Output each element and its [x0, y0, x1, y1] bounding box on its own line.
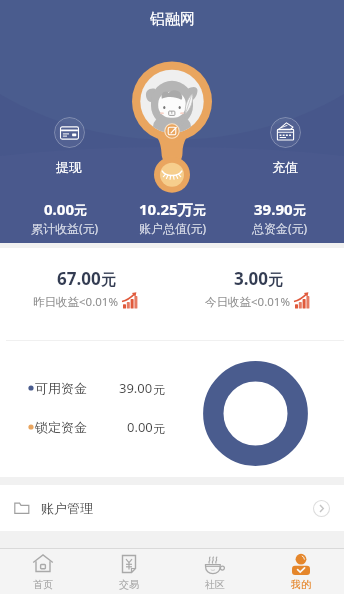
staticText: 我的: [291, 578, 311, 591]
staticText: 铝融网: [150, 10, 195, 29]
staticText: 元: [153, 421, 165, 436]
button[interactable]: 首页: [0, 549, 86, 594]
staticText: 0.00: [44, 199, 74, 219]
staticText: 39.90: [254, 199, 293, 219]
staticText: 元: [193, 203, 206, 219]
staticText: 提现: [56, 159, 82, 175]
staticText: 昨日收益<0.01%: [33, 294, 118, 310]
staticText: 10.25万: [139, 199, 193, 219]
button[interactable]: 社区: [172, 549, 258, 594]
staticText: 元: [153, 382, 165, 397]
staticText: 总资金(元): [252, 220, 308, 236]
staticText: 今日收益<0.01%: [205, 294, 290, 310]
button[interactable]: 交易: [86, 549, 172, 594]
staticText: 账户总值(元): [139, 220, 207, 236]
staticText: 元: [293, 203, 306, 219]
button[interactable]: 头像: [131, 61, 213, 196]
staticText: 锁定资金: [35, 419, 87, 435]
staticText: 元: [101, 271, 116, 290]
other: 提现: [54, 117, 85, 148]
staticText: 累计收益(元): [31, 220, 99, 236]
button[interactable]: 账户管理: [0, 485, 344, 531]
button[interactable]: 充值: [258, 117, 312, 175]
staticText: 0.00: [127, 418, 153, 436]
staticText: 3.00: [234, 267, 268, 290]
staticText: 可用资金: [35, 380, 87, 396]
staticText: 39.00: [119, 379, 153, 397]
staticText: 充值: [272, 159, 298, 175]
staticText: 67.00: [57, 267, 101, 290]
staticText: 账户管理: [41, 500, 93, 516]
staticText: 元: [74, 203, 87, 219]
button[interactable]: 我的: [258, 549, 344, 594]
staticText: 社区: [205, 578, 225, 591]
staticText: 首页: [33, 578, 53, 591]
other: 充值: [270, 117, 301, 148]
staticText: 元: [268, 271, 283, 290]
staticText: 交易: [119, 578, 139, 591]
button[interactable]: 提现: [42, 117, 96, 175]
